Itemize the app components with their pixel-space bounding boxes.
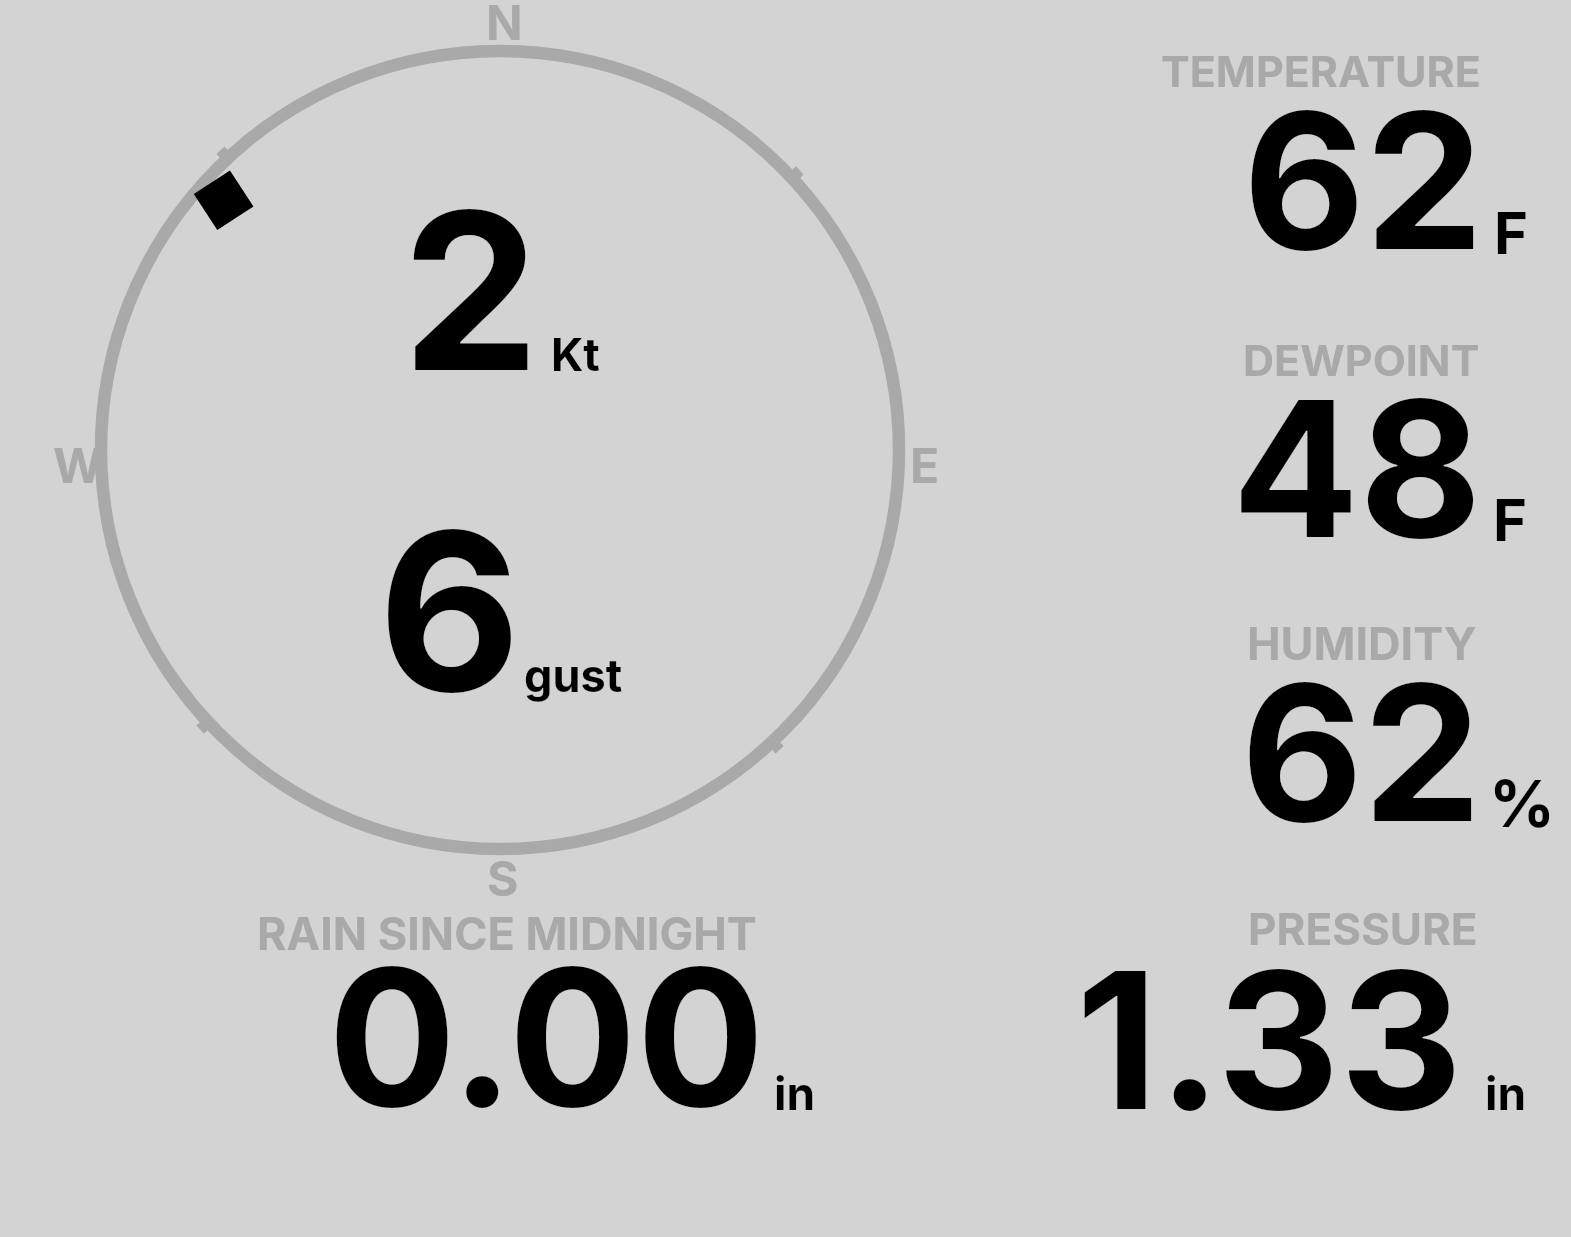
staticText: W (53, 436, 103, 494)
button[interactable]: Wind direction dial (80, 30, 920, 870)
staticText: % (1489, 764, 1556, 843)
staticText: 62 (1243, 67, 1484, 294)
staticText: E (910, 436, 940, 494)
staticText: TEMPERATURE (1161, 45, 1481, 97)
staticText: RAIN SINCE MIDNIGHT (257, 906, 757, 960)
button[interactable]: Temperature 62 F (1150, 45, 1560, 260)
staticText: N (486, 0, 523, 51)
staticText: 48 (1232, 355, 1482, 582)
staticText: Kt (551, 327, 600, 381)
staticText: F (1493, 485, 1528, 555)
staticText: in (1485, 1065, 1527, 1121)
staticText: F (1494, 198, 1529, 268)
button[interactable]: Pressure 1.33 in (1060, 900, 1560, 1115)
staticText: HUMIDITY (1247, 616, 1477, 670)
button[interactable]: Humidity 62 percent (1150, 612, 1560, 830)
staticText: in (774, 1065, 816, 1121)
staticText: 6 (378, 478, 521, 744)
staticText: 62 (1241, 639, 1482, 866)
button[interactable]: Dewpoint 48 F (1150, 330, 1560, 545)
staticText: DEWPOINT (1243, 334, 1480, 386)
staticText: 0.00 (328, 922, 765, 1152)
staticText: S (487, 849, 519, 907)
staticText: 2 (402, 159, 540, 423)
staticText: PRESSURE (1248, 902, 1478, 955)
staticText: gust (524, 648, 623, 702)
staticText: 1.33 (1076, 925, 1463, 1155)
button[interactable]: Rain since midnight 0.00 in (250, 905, 820, 1115)
